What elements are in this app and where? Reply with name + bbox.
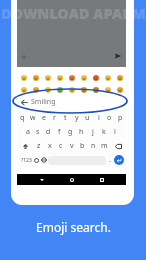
button[interactable]: Emoji [30, 84, 42, 96]
button[interactable]: Attach [17, 50, 31, 64]
button[interactable]: Shift [17, 139, 33, 153]
staticText: DOWNLOAD APARM [1, 4, 146, 23]
button[interactable]: a [23, 125, 33, 139]
button[interactable]: w [27, 111, 38, 125]
button[interactable]: j [87, 125, 98, 139]
button[interactable]: s [33, 125, 43, 139]
staticText: d [46, 127, 51, 137]
button[interactable]: Emoji [90, 72, 102, 84]
button[interactable]: Emoji [114, 72, 126, 84]
button[interactable]: p [115, 111, 126, 125]
button[interactable]: u [82, 111, 93, 125]
button[interactable]: e [38, 111, 49, 125]
staticText: e [42, 113, 46, 123]
staticText: p [118, 113, 123, 123]
staticText: c [59, 141, 63, 151]
button[interactable]: Home [66, 174, 77, 185]
staticText: g [68, 127, 73, 137]
button[interactable]: d [43, 125, 54, 139]
button[interactable]: Emoji [102, 72, 114, 84]
button[interactable]: v [66, 139, 77, 153]
staticText: r [53, 113, 56, 123]
button[interactable]: Emoji [66, 72, 78, 84]
button[interactable]: Back [36, 174, 47, 185]
button[interactable]: Back [20, 98, 29, 107]
staticText: Emoji search. [36, 219, 111, 235]
staticText: v [70, 141, 74, 151]
button[interactable]: Emoji [54, 84, 66, 96]
button[interactable]: Emoji [30, 72, 42, 84]
button[interactable]: Emoji [114, 84, 126, 96]
button[interactable]: f [54, 125, 65, 139]
button[interactable]: o [104, 111, 115, 125]
button[interactable]: Emoji keyboard [33, 153, 40, 167]
button[interactable]: Emoji [17, 72, 30, 84]
button[interactable]: z [33, 139, 44, 153]
button[interactable]: Emoji [17, 84, 30, 96]
staticText: h [79, 127, 84, 137]
button[interactable]: r [49, 111, 60, 125]
staticText: f [58, 127, 61, 137]
button[interactable]: h [76, 125, 87, 139]
staticText: z [37, 141, 41, 151]
staticText: i [98, 113, 100, 123]
button[interactable]: Emoji [66, 84, 78, 96]
staticText: u [85, 113, 90, 123]
button[interactable]: b [77, 139, 88, 153]
button[interactable]: x [44, 139, 55, 153]
button[interactable]: Send [110, 47, 126, 67]
staticText: q [20, 113, 25, 123]
staticText: j [92, 127, 94, 137]
staticText: t [64, 113, 67, 123]
staticText: b [80, 141, 85, 151]
button[interactable]: g [65, 125, 76, 139]
button[interactable]: Language [40, 153, 48, 167]
button[interactable]: Enter [114, 155, 124, 165]
button[interactable]: l [109, 125, 120, 139]
button[interactable]: q [17, 111, 27, 125]
button[interactable]: ?123 [19, 153, 33, 167]
staticText: a [26, 127, 30, 137]
button[interactable]: Emoji [42, 84, 54, 96]
button[interactable]: Backspace [110, 139, 126, 153]
button[interactable]: k [98, 125, 109, 139]
staticText: s [36, 127, 40, 137]
button[interactable]: y [71, 111, 82, 125]
staticText: k [102, 127, 106, 137]
button[interactable]: n [88, 139, 99, 153]
staticText: m [101, 141, 108, 151]
button[interactable]: Emoji [42, 72, 54, 84]
staticText: o [107, 113, 112, 123]
button[interactable]: Emoji [102, 84, 114, 96]
button[interactable]: Emoji [78, 84, 90, 96]
button[interactable]: c [55, 139, 66, 153]
staticText: w [30, 113, 36, 123]
staticText: Smiling [31, 97, 56, 107]
button[interactable]: Emoji [90, 84, 102, 96]
button[interactable]: t [60, 111, 71, 125]
button[interactable]: m [99, 139, 110, 153]
button[interactable]: i [93, 111, 104, 125]
staticText: x [48, 141, 52, 151]
staticText: l [114, 127, 116, 137]
staticText: n [91, 141, 96, 151]
button[interactable]: Emoji [54, 72, 66, 84]
button[interactable]: Emoji [78, 72, 90, 84]
staticText: y [75, 113, 79, 123]
button[interactable]: . [106, 153, 114, 167]
staticText: . [109, 155, 111, 165]
button[interactable]: Recents [96, 174, 107, 185]
staticText: ?123 [21, 157, 32, 164]
